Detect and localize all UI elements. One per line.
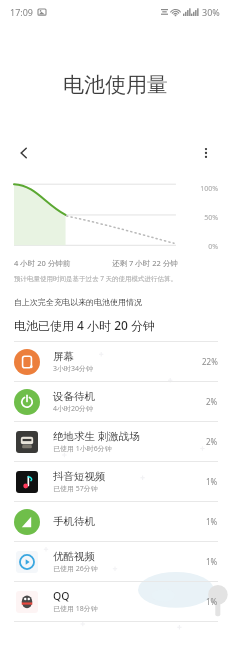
staticText: 预计电量使用时间是基于过去 7 天的使用模式进行估算。 xyxy=(14,274,216,283)
staticText: 抖音短视频 xyxy=(53,470,106,483)
staticText: 已使用 57分钟 xyxy=(53,484,98,494)
staticText: 4 小时 20 分钟前 xyxy=(14,258,71,268)
staticText: 自上次完全充电以来的电池使用情况 xyxy=(14,297,216,307)
staticText: 已使用 1小时6分钟 xyxy=(53,444,112,454)
staticText: 手机待机 xyxy=(53,515,95,528)
staticText: 电池使用量 xyxy=(63,72,168,98)
button[interactable]: 优酷视频 xyxy=(0,542,230,581)
staticText: 2% xyxy=(206,396,218,407)
staticText: 4小时20分钟 xyxy=(53,404,94,414)
button[interactable]: 绝地求生 刺激战场 xyxy=(0,422,230,461)
staticText: 2% xyxy=(206,436,218,447)
staticText: 已使用 26分钟 xyxy=(53,564,98,574)
button[interactable]: 设备待机 xyxy=(0,382,230,421)
staticText: 3小时34分钟 xyxy=(53,364,94,374)
staticText: 100% xyxy=(179,184,218,194)
staticText: QQ xyxy=(53,589,70,603)
button[interactable]: More options xyxy=(192,139,220,167)
button[interactable]: 抖音短视频 xyxy=(0,462,230,501)
button[interactable]: 手机待机 xyxy=(0,502,230,541)
staticText: 优酷视频 xyxy=(53,550,95,563)
staticText: 17:09 xyxy=(10,6,34,18)
staticText: 绝地求生 刺激战场 xyxy=(53,429,140,443)
staticText: 1% xyxy=(206,476,218,487)
button[interactable]: Back xyxy=(10,139,38,167)
staticText: 0% xyxy=(179,242,218,252)
button[interactable]: 屏幕 xyxy=(0,342,230,381)
staticText: 22% xyxy=(202,356,218,367)
staticText: 还剩 7 小时 22 分钟 xyxy=(72,258,218,268)
staticText: 已使用 18分钟 xyxy=(53,604,98,614)
staticText: 1% xyxy=(206,516,218,527)
button[interactable]: QQ xyxy=(0,582,230,621)
staticText: 屏幕 xyxy=(53,350,74,363)
staticText: 1% xyxy=(206,596,218,607)
staticText: 设备待机 xyxy=(53,390,95,403)
staticText: 50% xyxy=(179,213,218,223)
staticText: 30% xyxy=(202,6,220,18)
staticText: 1% xyxy=(206,556,218,567)
staticText: 电池已使用 4 小时 20 分钟 xyxy=(14,317,216,333)
